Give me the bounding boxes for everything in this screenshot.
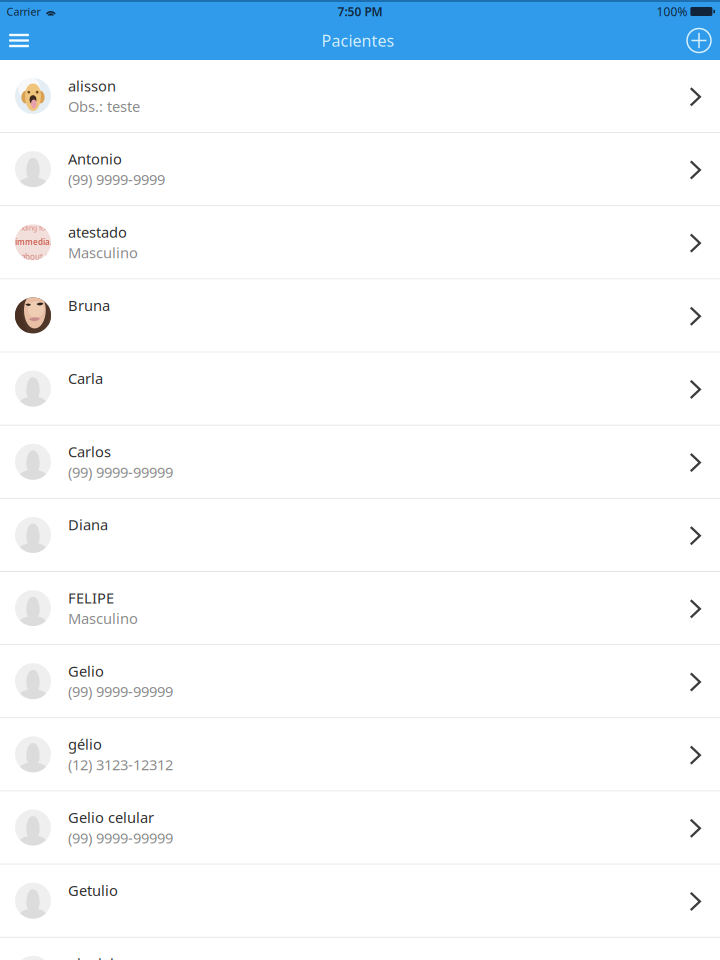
staticText: 7:50 PM: [337, 3, 382, 19]
button[interactable]: alisson: [0, 60, 720, 133]
staticText: 100%: [656, 3, 687, 19]
button[interactable]: Carlos: [0, 426, 720, 499]
button[interactable]: Add patient: [678, 21, 720, 60]
staticText: Getulio: [68, 881, 118, 900]
staticText: Carrier: [6, 4, 40, 19]
staticText: FELIPE: [68, 588, 114, 607]
button[interactable]: Gelio: [0, 645, 720, 718]
button[interactable]: Gelio celular: [0, 791, 720, 865]
button[interactable]: ending for: [0, 206, 720, 279]
button[interactable]: gélio: [0, 718, 720, 791]
staticText: Masculino: [68, 243, 138, 262]
staticText: (12) 3123-12312: [68, 755, 173, 774]
staticText: s about thi: [15, 251, 55, 262]
staticText: alisson: [68, 76, 116, 95]
staticText: gélio: [68, 734, 102, 754]
staticText: Masculino: [68, 608, 138, 628]
button[interactable]: Diana: [0, 499, 720, 572]
button[interactable]: FELIPE: [0, 572, 720, 645]
staticText: immediately: [15, 237, 59, 247]
staticText: Gelio celular: [68, 807, 154, 827]
staticText: Carla: [68, 369, 103, 388]
staticText: Pacientes: [321, 30, 394, 51]
staticText: (99) 9999-99999: [68, 462, 173, 482]
staticText: Bruna: [68, 295, 110, 315]
button[interactable]: Menu: [0, 21, 38, 60]
button[interactable]: Bruna: [0, 279, 720, 353]
staticText: Gelio: [68, 661, 104, 681]
staticText: (99) 9999-9999: [68, 170, 165, 189]
button[interactable]: Antonio: [0, 133, 720, 206]
staticText: Obs.: teste: [68, 96, 140, 116]
staticText: Carlos: [68, 442, 111, 461]
staticText: ending for: [15, 223, 48, 232]
staticText: atestado: [68, 222, 127, 242]
button[interactable]: gleglebe: [0, 938, 720, 960]
staticText: gleglebe: [68, 954, 127, 960]
staticText: Antonio: [68, 149, 122, 169]
button[interactable]: Getulio: [0, 865, 720, 938]
staticText: (99) 9999-99999: [68, 682, 173, 701]
staticText: (99) 9999-99999: [68, 828, 173, 847]
staticText: Diana: [68, 515, 108, 534]
button[interactable]: Carla: [0, 353, 720, 426]
